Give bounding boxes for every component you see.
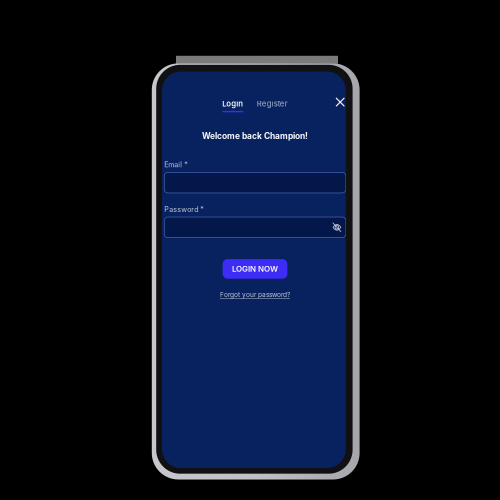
staticText: Forgot your password? bbox=[220, 291, 290, 299]
button[interactable]: Close bbox=[335, 96, 346, 108]
button[interactable]: Login bbox=[222, 99, 243, 112]
staticText: Login bbox=[222, 99, 243, 108]
button[interactable]: Forgot your password? bbox=[220, 291, 290, 299]
staticText: Welcome back Champion! bbox=[202, 131, 308, 141]
staticText: LOGIN NOW bbox=[232, 264, 278, 274]
staticText: Email * bbox=[164, 160, 188, 169]
button[interactable]: LOGIN NOW bbox=[223, 259, 287, 279]
staticText: Register bbox=[257, 99, 288, 108]
staticText: Password * bbox=[164, 205, 204, 214]
button[interactable]: Register bbox=[257, 99, 288, 112]
